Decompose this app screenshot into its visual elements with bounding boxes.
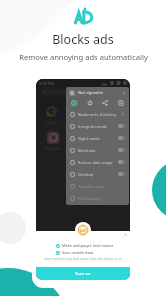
staticText: Some websites may load slower when this … [44, 257, 122, 261]
button[interactable]: Menu action [118, 100, 124, 106]
button[interactable]: Night mode [66, 132, 129, 144]
button[interactable]: Incognito mode [66, 120, 129, 132]
button[interactable]: Reduce data usage [66, 156, 129, 168]
button[interactable]: Menu action [87, 100, 93, 106]
button[interactable]: Close [123, 232, 128, 237]
staticText: Search or type web address [49, 89, 101, 94]
staticText: Remove annoying ads automatically [19, 52, 148, 62]
button[interactable]: Find in page [66, 192, 129, 204]
staticText: Make webpages look neater [62, 243, 114, 248]
staticText: Instagram [45, 146, 62, 150]
button[interactable]: Block ads [66, 144, 129, 156]
button[interactable]: Google [45, 105, 58, 118]
staticText: Night mode [78, 136, 100, 141]
button[interactable]: Turn on [36, 267, 130, 280]
staticText: Translate page [78, 184, 105, 189]
staticText: Block ads [78, 148, 96, 153]
button[interactable]: Not signed in [66, 87, 129, 98]
button[interactable]: Desktop [66, 168, 129, 180]
staticText: Save mobile data [62, 250, 94, 255]
staticText: AD [80, 228, 86, 233]
button[interactable]: Bookmarks & history [66, 108, 129, 120]
staticText: Find in page [78, 196, 101, 201]
button[interactable]: Search or type web address [40, 87, 126, 96]
staticText: Bookmarks & history [78, 112, 117, 117]
staticText: Google [46, 120, 58, 124]
staticText: Reduce data usage [78, 160, 113, 165]
staticText: Incognito mode [78, 124, 108, 129]
button[interactable]: Menu action [102, 100, 108, 106]
staticText: Not signed in [78, 90, 104, 95]
staticText: Turn on [75, 271, 91, 277]
staticText: 9:30 PM [39, 81, 55, 86]
button[interactable]: Instagram [47, 131, 60, 144]
staticText: Blocks ads [52, 31, 114, 45]
button[interactable]: Translate page [66, 180, 129, 192]
staticText: Desktop [78, 172, 94, 177]
button[interactable]: Menu action [71, 100, 77, 106]
